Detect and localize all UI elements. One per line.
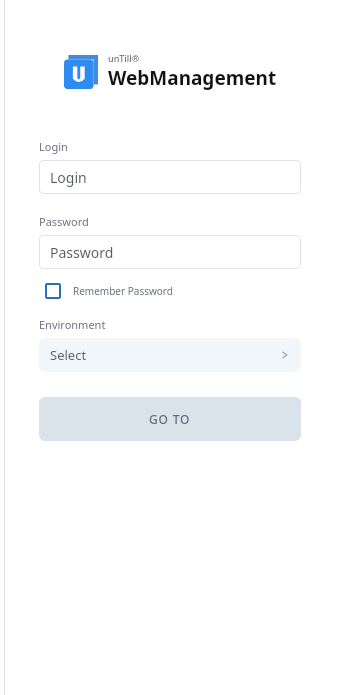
staticText: WebManagement	[108, 65, 277, 91]
staticText: Password	[39, 214, 89, 229]
button[interactable]: Select	[39, 338, 301, 372]
staticText: Password	[50, 243, 114, 262]
button[interactable]: Login	[39, 160, 301, 194]
button[interactable]: GO TO	[39, 397, 301, 441]
staticText: GO TO	[149, 411, 191, 427]
other: unTill logo	[64, 55, 98, 89]
staticText: unTill®	[108, 52, 140, 64]
button[interactable]: Remember Password	[39, 281, 173, 301]
staticText: Select	[50, 346, 87, 364]
staticText: Login	[39, 139, 68, 154]
staticText: Environment	[39, 317, 106, 332]
button[interactable]: Password	[39, 235, 301, 269]
staticText: Login	[50, 168, 87, 187]
staticText: Remember Password	[73, 284, 173, 298]
